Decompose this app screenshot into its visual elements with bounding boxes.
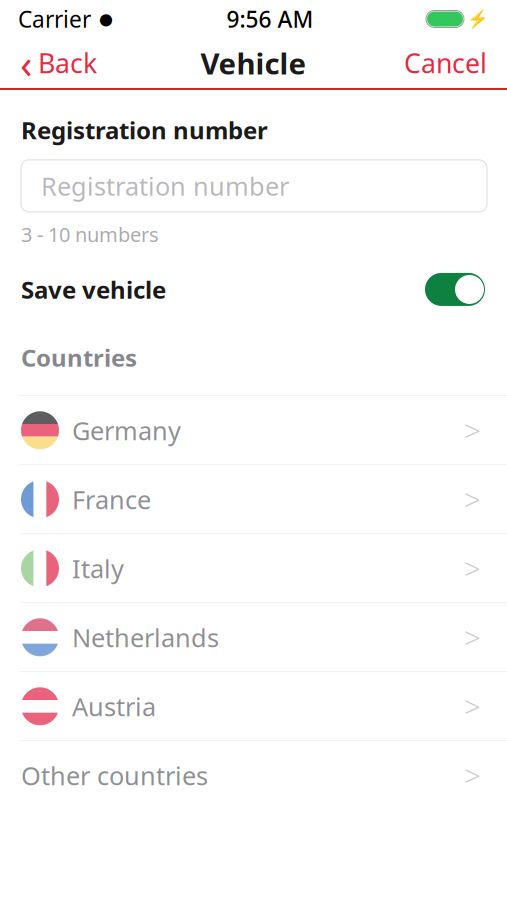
- staticText: >: [464, 618, 481, 657]
- staticText: Carrier: [18, 4, 91, 34]
- staticText: Registration number: [41, 169, 289, 203]
- button[interactable]: Germany: [0, 396, 507, 465]
- staticText: >: [464, 687, 481, 726]
- staticText: Registration number: [21, 114, 268, 146]
- button[interactable]: Austria: [0, 672, 507, 741]
- button[interactable]: Other countries: [0, 741, 507, 809]
- button[interactable]: France: [0, 465, 507, 534]
- staticText: Other countries: [21, 758, 208, 792]
- staticText: ●: [99, 10, 113, 28]
- staticText: Netherlands: [72, 620, 219, 654]
- staticText: 9:56 AM: [226, 4, 313, 34]
- staticText: Austria: [72, 689, 156, 723]
- staticText: Cancel: [404, 45, 487, 81]
- staticText: >: [464, 756, 481, 795]
- staticText: ‹: [20, 36, 32, 89]
- staticText: Germany: [72, 413, 181, 447]
- button[interactable]: Cancel: [394, 38, 507, 88]
- staticText: >: [464, 411, 481, 450]
- staticText: ⚡: [467, 9, 489, 29]
- button[interactable]: Netherlands: [0, 603, 507, 672]
- button[interactable]: ‹: [0, 38, 107, 88]
- staticText: Back: [38, 45, 97, 81]
- button[interactable]: Italy: [0, 534, 507, 603]
- staticText: France: [72, 482, 151, 516]
- staticText: 3 - 10 numbers: [21, 221, 159, 247]
- staticText: Countries: [21, 341, 137, 373]
- staticText: >: [464, 549, 481, 588]
- staticText: Italy: [72, 551, 124, 585]
- staticText: Save vehicle: [21, 273, 166, 305]
- button[interactable]: Save vehicle: [424, 269, 486, 309]
- staticText: >: [464, 480, 481, 519]
- staticText: Vehicle: [200, 43, 306, 82]
